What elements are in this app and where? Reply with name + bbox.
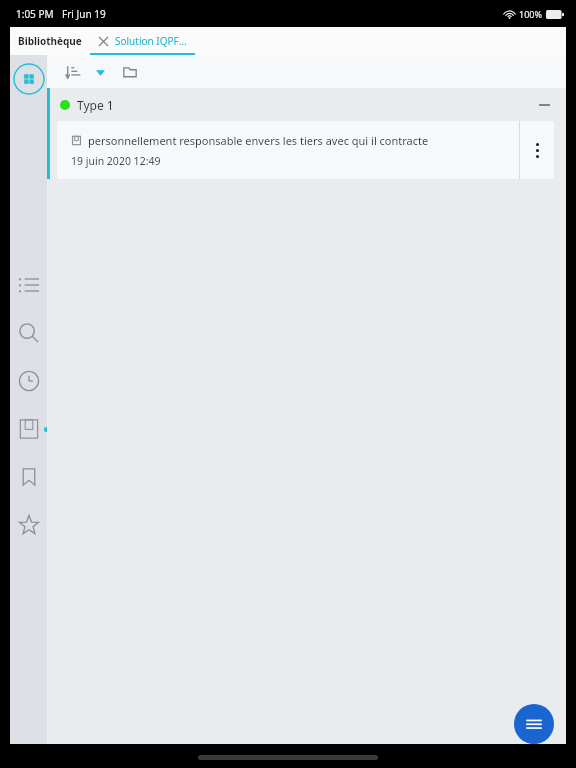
button[interactable]: Folder	[119, 61, 141, 83]
staticText: personnellement responsable envers les t…	[88, 133, 429, 148]
button[interactable]: Collapse	[536, 97, 552, 113]
button[interactable]: Grid view	[13, 63, 45, 95]
button[interactable]: Sort options	[91, 63, 109, 81]
staticText: Solution IQPF ...	[115, 34, 187, 48]
staticText: Type 1	[77, 97, 114, 113]
button[interactable]: List	[17, 273, 41, 297]
button[interactable]: Bookmarks	[17, 465, 41, 489]
button[interactable]: More options	[520, 121, 554, 179]
button[interactable]: Solution IQPF ...	[90, 27, 195, 55]
button[interactable]: Library	[17, 417, 41, 441]
staticText: Fri Jun 19	[62, 7, 106, 21]
button[interactable]: Type 1	[50, 88, 566, 121]
button[interactable]: Search	[17, 321, 41, 345]
staticText: 19 juin 2020 12:49	[71, 154, 161, 168]
button[interactable]: personnellement responsable envers les t…	[57, 121, 554, 179]
button[interactable]: Favourites	[17, 513, 41, 537]
button[interactable]: Menu	[514, 704, 554, 744]
button[interactable]: Sort	[61, 61, 83, 83]
button[interactable]: Bibliothèque	[10, 27, 90, 55]
staticText: 1:05 PM	[16, 7, 54, 21]
staticText: 100%	[519, 8, 542, 20]
button[interactable]: History	[17, 369, 41, 393]
staticText: Bibliothèque	[18, 34, 82, 48]
